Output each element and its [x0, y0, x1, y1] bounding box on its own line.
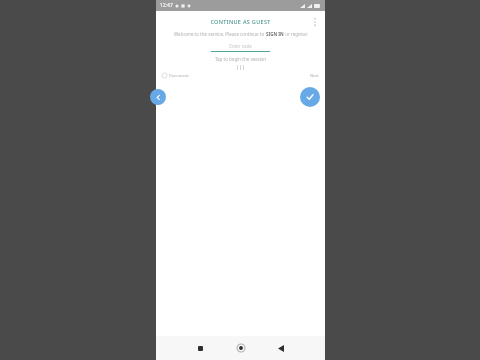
staticText: 12:47: [160, 2, 173, 9]
staticText: CONTINUE AS GUEST: [210, 18, 271, 25]
button[interactable]: More options: [309, 16, 321, 28]
staticText: Welcome to the service. Please continue …: [174, 31, 266, 37]
button[interactable]: Recent apps: [192, 340, 208, 356]
staticText: Enter code: [229, 43, 252, 49]
staticText: Document: [169, 73, 189, 78]
button[interactable]: Back: [273, 340, 289, 356]
staticText: Tap to begin the session: [156, 56, 325, 62]
button[interactable]: Home: [233, 340, 249, 356]
button[interactable]: Confirm: [300, 87, 320, 107]
staticText: Next: [310, 73, 319, 78]
button[interactable]: Document: [162, 73, 189, 78]
staticText: or register.: [284, 31, 308, 37]
staticText: SIGN IN: [266, 31, 284, 37]
button[interactable]: Enter code: [211, 43, 270, 52]
button[interactable]: Next: [310, 73, 319, 78]
button[interactable]: Previous: [150, 89, 166, 105]
